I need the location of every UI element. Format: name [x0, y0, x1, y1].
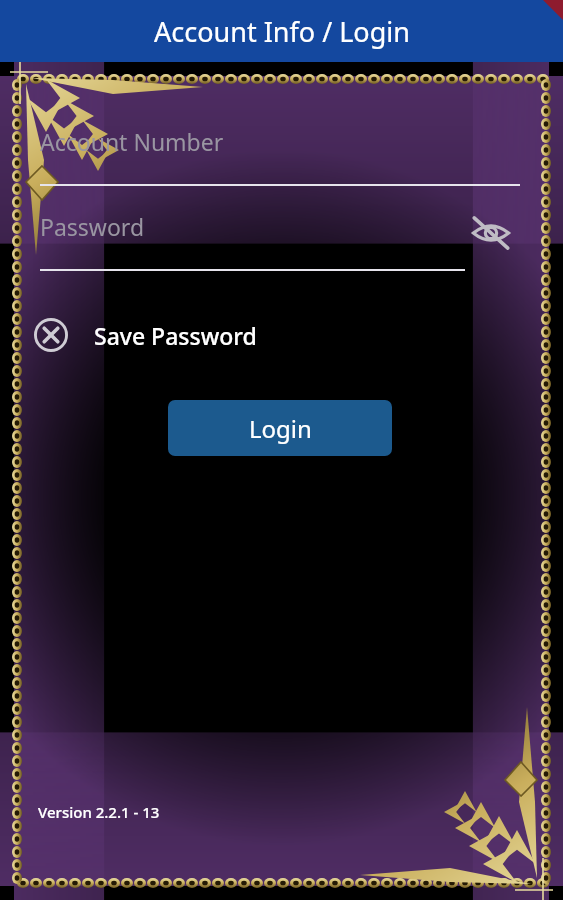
- button[interactable]: Login: [168, 400, 392, 456]
- staticText: Login: [249, 412, 312, 445]
- staticText: Account Info / Login: [154, 13, 410, 50]
- button[interactable]: Password: [40, 199, 465, 253]
- staticText: Version 2.2.1 - 13: [38, 802, 160, 822]
- button[interactable]: Account Number: [40, 114, 520, 168]
- button[interactable]: Show password: [462, 204, 520, 262]
- staticText: Save Password: [94, 320, 257, 351]
- staticText: Account Number: [40, 126, 224, 157]
- button[interactable]: Save Password: [34, 307, 257, 363]
- staticText: Password: [40, 211, 145, 242]
